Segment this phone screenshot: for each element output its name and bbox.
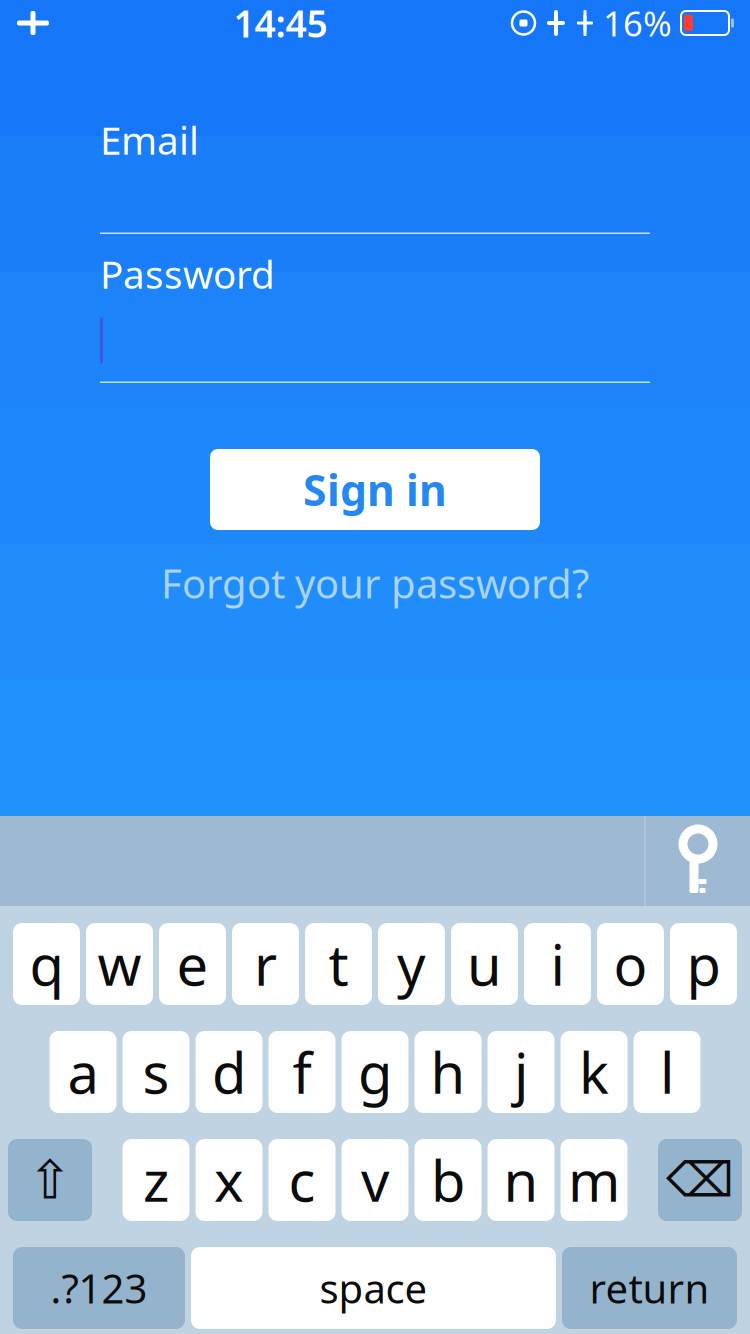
staticText: o: [613, 927, 647, 1001]
staticText: Sign in: [303, 461, 447, 518]
button[interactable]: v: [341, 1139, 408, 1221]
button[interactable]: q: [13, 923, 80, 1005]
staticText: ⇧: [27, 1150, 72, 1210]
button[interactable]: z: [122, 1139, 189, 1221]
button[interactable]: i: [524, 923, 591, 1005]
button[interactable]: Shift: [8, 1139, 92, 1221]
button[interactable]: r: [232, 923, 299, 1005]
button[interactable]: y: [378, 923, 445, 1005]
staticText: n: [503, 1143, 538, 1217]
staticText: y: [397, 927, 426, 1001]
staticText: return: [589, 1261, 709, 1314]
button[interactable]: p: [670, 923, 737, 1005]
staticText: g: [358, 1035, 392, 1109]
button[interactable]: Passwords: [646, 816, 750, 906]
staticText: l: [660, 1035, 674, 1109]
staticText: .?123: [50, 1261, 147, 1314]
staticText: s: [142, 1035, 169, 1109]
button[interactable]: .?123: [13, 1247, 185, 1329]
staticText: z: [143, 1143, 169, 1217]
staticText: 16%: [603, 0, 672, 46]
staticText: v: [361, 1143, 389, 1217]
staticText: x: [214, 1143, 244, 1217]
staticText: a: [67, 1035, 98, 1109]
button[interactable]: d: [195, 1031, 262, 1113]
button[interactable]: Delete: [658, 1139, 742, 1221]
staticText: j: [514, 1035, 528, 1109]
staticText: m: [568, 1143, 620, 1217]
button[interactable]: s: [122, 1031, 189, 1113]
button[interactable]: u: [451, 923, 518, 1005]
button[interactable]: x: [195, 1139, 262, 1221]
button[interactable]: g: [341, 1031, 408, 1113]
staticText: c: [288, 1143, 315, 1217]
button[interactable]: space: [191, 1247, 556, 1329]
button[interactable]: return: [562, 1247, 737, 1329]
button[interactable]: e: [159, 923, 226, 1005]
staticText: d: [212, 1035, 246, 1109]
button[interactable]: m: [560, 1139, 627, 1221]
staticText: u: [467, 927, 502, 1001]
staticText: b: [431, 1143, 465, 1217]
button[interactable]: Sign in: [210, 449, 540, 530]
staticText: h: [430, 1035, 465, 1109]
button[interactable]: t: [305, 923, 372, 1005]
staticText: e: [176, 927, 208, 1001]
button[interactable]: h: [414, 1031, 481, 1113]
button[interactable]: o: [597, 923, 664, 1005]
staticText: k: [579, 1035, 609, 1109]
staticText: space: [319, 1261, 427, 1314]
staticText: p: [686, 927, 720, 1001]
staticText: i: [550, 927, 564, 1001]
button[interactable]: f: [268, 1031, 335, 1113]
button[interactable]: n: [487, 1139, 554, 1221]
staticText: q: [29, 927, 63, 1001]
staticText: t: [328, 927, 348, 1001]
button[interactable]: w: [86, 923, 153, 1005]
button[interactable]: j: [487, 1031, 554, 1113]
button[interactable]: k: [560, 1031, 627, 1113]
button[interactable]: l: [633, 1031, 700, 1113]
staticText: Forgot your password?: [161, 556, 589, 609]
button[interactable]: Forgot your password?: [155, 558, 595, 608]
button[interactable]: c: [268, 1139, 335, 1221]
button[interactable]: a: [49, 1031, 116, 1113]
staticText: w: [97, 927, 141, 1001]
staticText: Email: [100, 114, 199, 165]
staticText: 14:45: [233, 0, 327, 48]
button[interactable]: b: [414, 1139, 481, 1221]
staticText: r: [254, 927, 277, 1001]
staticText: ⌫: [666, 1153, 734, 1207]
staticText: f: [292, 1035, 311, 1109]
staticText: Password: [100, 248, 275, 299]
